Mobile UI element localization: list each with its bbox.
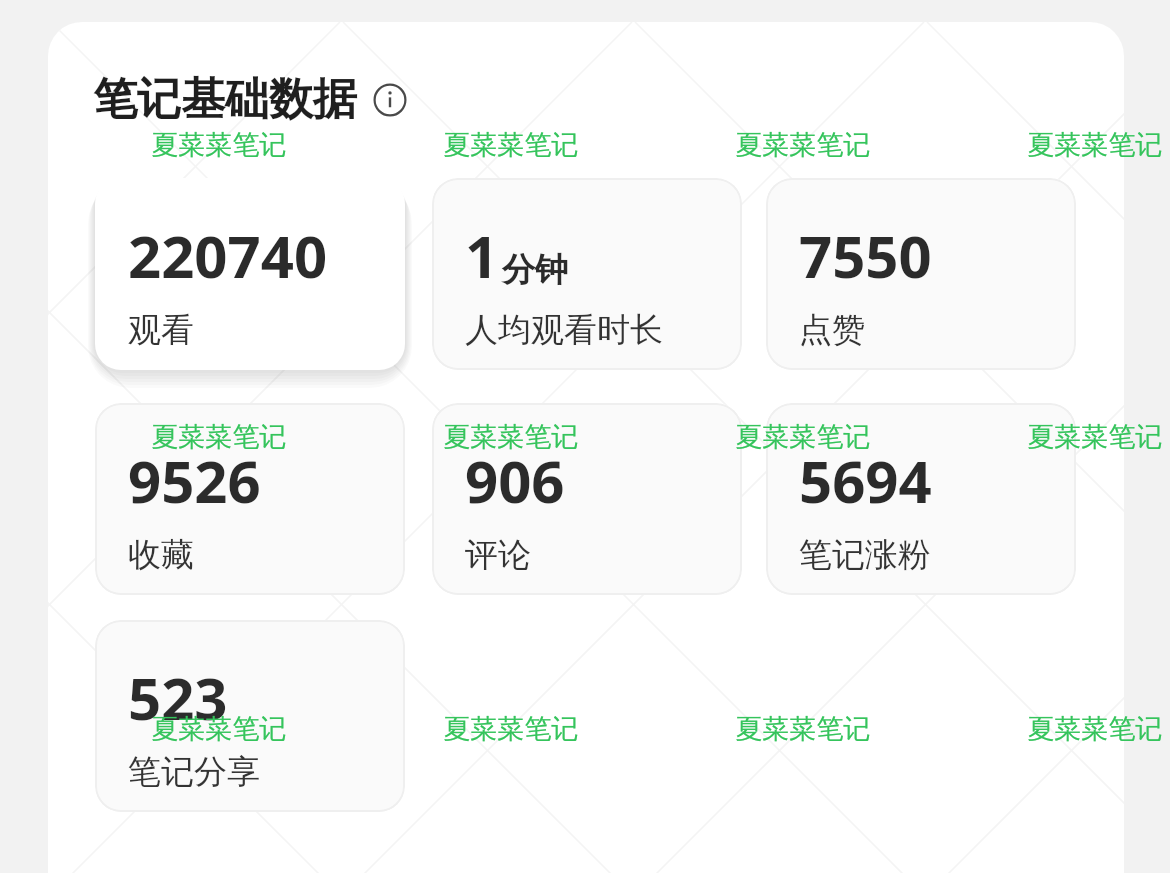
- button[interactable]: 220740: [95, 178, 405, 370]
- staticText: 笔记涨粉: [799, 534, 931, 576]
- staticText: 夏菜菜笔记: [438, 420, 584, 454]
- staticText: 220740: [128, 216, 328, 295]
- staticText: 夏菜菜笔记: [1022, 712, 1168, 746]
- staticText: 1: [465, 216, 499, 295]
- staticText: 夏菜菜笔记: [146, 712, 292, 746]
- button[interactable]: 笔记基础数据: [93, 72, 407, 127]
- staticText: 夏菜菜笔记: [730, 128, 876, 162]
- staticText: 9526: [128, 441, 261, 520]
- staticText: 夏菜菜笔记: [438, 712, 584, 746]
- staticText: 906: [465, 441, 565, 520]
- staticText: 夏菜菜笔记: [146, 420, 292, 454]
- staticText: 夏菜菜笔记: [730, 420, 876, 454]
- button[interactable]: 9526: [95, 403, 405, 595]
- staticText: 夏菜菜笔记: [1022, 420, 1168, 454]
- staticText: 评论: [465, 534, 531, 576]
- staticText: 笔记分享: [128, 751, 260, 793]
- staticText: 夏菜菜笔记: [438, 128, 584, 162]
- staticText: 523: [128, 658, 228, 737]
- button[interactable]: 523: [95, 620, 405, 812]
- staticText: 收藏: [128, 534, 194, 576]
- staticText: 7550: [799, 216, 932, 295]
- staticText: 夏菜菜笔记: [146, 128, 292, 162]
- staticText: 分钟: [502, 249, 568, 291]
- staticText: 观看: [128, 309, 194, 351]
- staticText: 点赞: [799, 309, 865, 351]
- button[interactable]: 5694: [766, 403, 1076, 595]
- staticText: 夏菜菜笔记: [1022, 128, 1168, 162]
- button[interactable]: 7550: [766, 178, 1076, 370]
- button[interactable]: 说明: [373, 83, 407, 117]
- button[interactable]: 1: [432, 178, 742, 370]
- button[interactable]: 906: [432, 403, 742, 595]
- staticText: 夏菜菜笔记: [730, 712, 876, 746]
- staticText: 人均观看时长: [465, 309, 663, 351]
- staticText: 笔记基础数据: [93, 72, 357, 127]
- staticText: 5694: [799, 441, 932, 520]
